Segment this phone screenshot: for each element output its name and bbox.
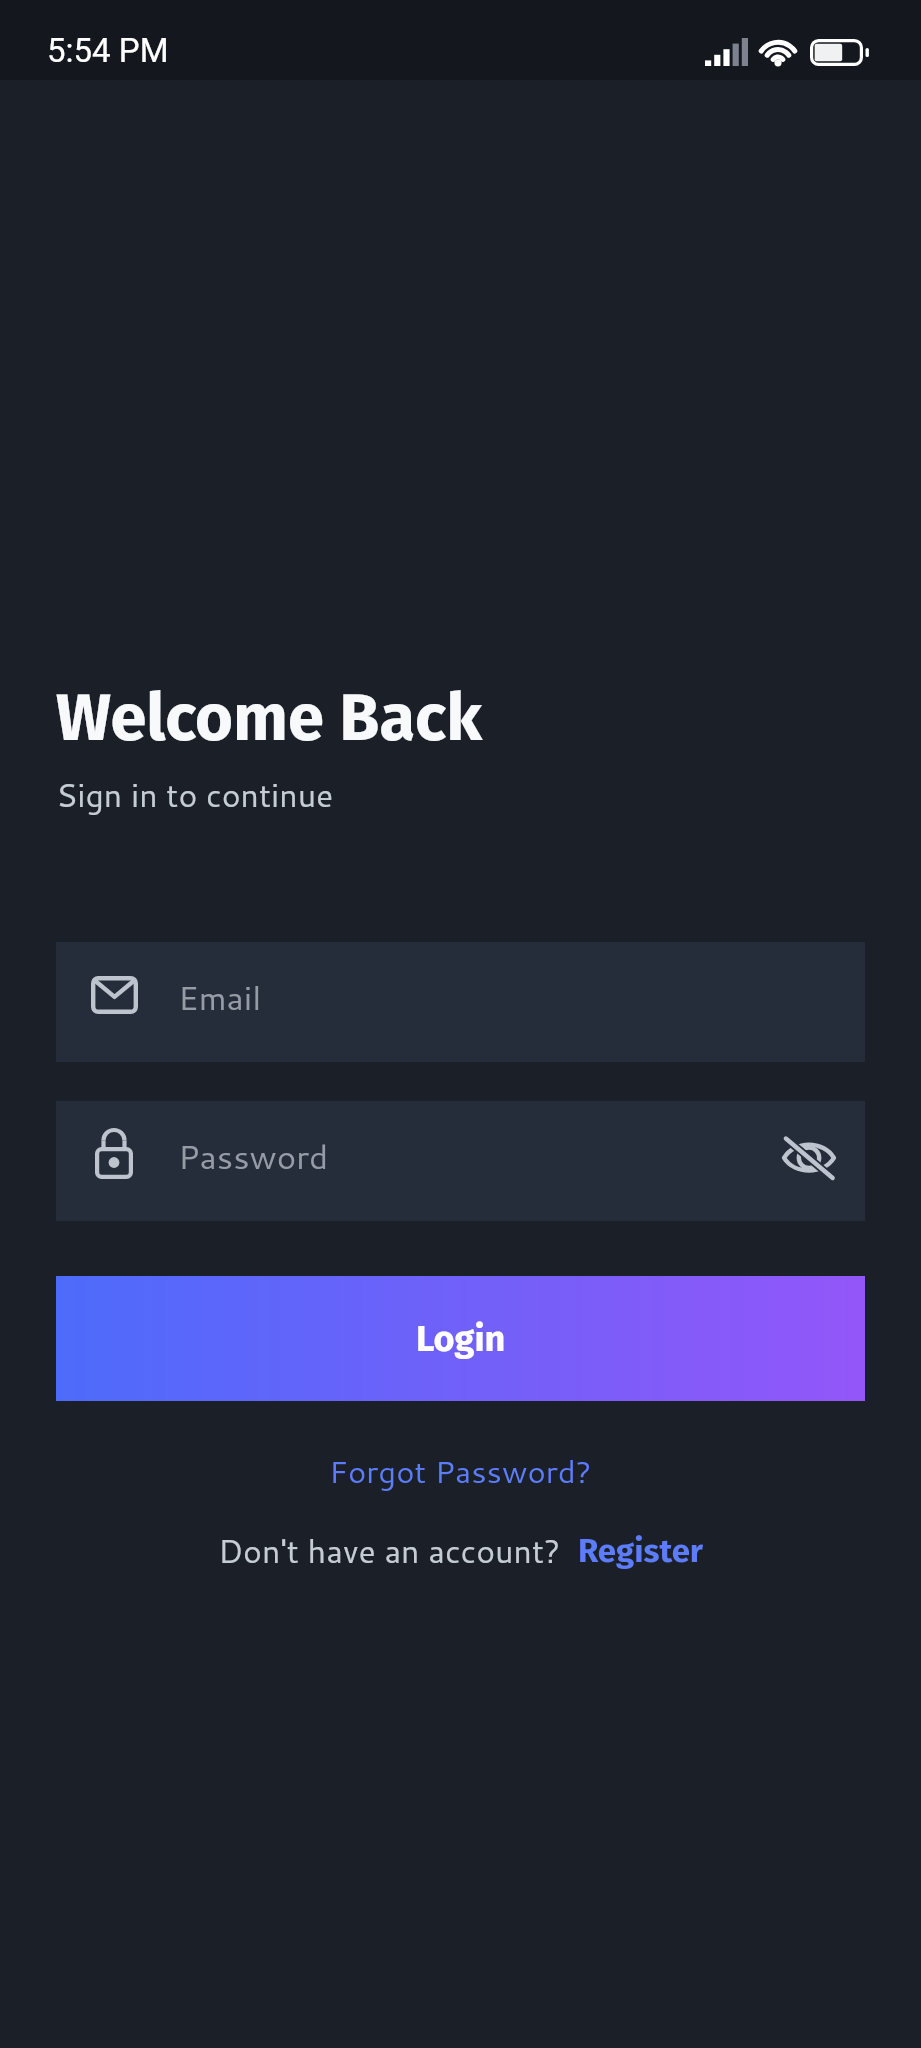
- button[interactable]: Forgot Password?: [309, 1439, 612, 1503]
- staticText: Don't have an account?: [218, 1528, 561, 1573]
- button[interactable]: Login: [56, 1276, 865, 1401]
- button[interactable]: Email: [56, 942, 865, 1062]
- button[interactable]: Password: [56, 1101, 865, 1221]
- button[interactable]: Register: [578, 1531, 704, 1571]
- staticText: Password: [178, 1133, 769, 1180]
- staticText: Email: [178, 974, 865, 1021]
- staticText: 5:54 PM: [47, 31, 169, 70]
- staticText: Register: [578, 1531, 704, 1571]
- staticText: Login: [416, 1317, 506, 1360]
- staticText: Sign in to continue: [56, 772, 334, 817]
- staticText: Forgot Password?: [329, 1449, 592, 1493]
- button[interactable]: Show password: [769, 1121, 849, 1201]
- staticText: Welcome Back: [56, 679, 483, 757]
